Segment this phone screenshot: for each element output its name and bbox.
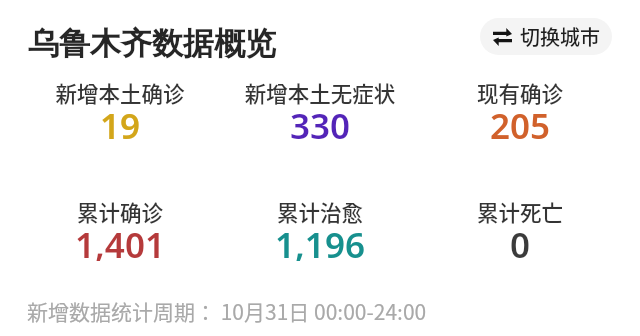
staticText: 乌鲁木齐数据概览 xyxy=(28,24,276,63)
button[interactable]: Switch city xyxy=(480,18,612,55)
staticText: 切换城市 xyxy=(520,22,600,51)
button[interactable]: 累计治愈 xyxy=(220,196,420,224)
button[interactable]: 现有确诊 xyxy=(420,77,620,105)
other: Switch city xyxy=(493,28,512,46)
staticText: 新增本土无症状 xyxy=(220,77,420,105)
staticText: 1,401 xyxy=(20,221,220,261)
staticText: 新增数据统计周期： 10月31日 00:00-24:00 xyxy=(27,296,427,324)
button[interactable]: 新增本土无症状 xyxy=(220,77,420,105)
staticText: 330 xyxy=(220,102,420,142)
staticText: 累计死亡 xyxy=(420,196,620,224)
staticText: 累计治愈 xyxy=(220,196,420,224)
staticText: 0 xyxy=(420,221,620,261)
staticText: 现有确诊 xyxy=(420,77,620,105)
staticText: 205 xyxy=(420,102,620,142)
button[interactable]: 新增本土确诊 xyxy=(20,77,220,105)
staticText: 新增本土确诊 xyxy=(20,77,220,105)
button[interactable]: 累计确诊 xyxy=(20,196,220,224)
staticText: 19 xyxy=(20,102,220,142)
button[interactable]: 累计死亡 xyxy=(420,196,620,224)
staticText: 累计确诊 xyxy=(20,196,220,224)
staticText: 1,196 xyxy=(220,221,420,261)
